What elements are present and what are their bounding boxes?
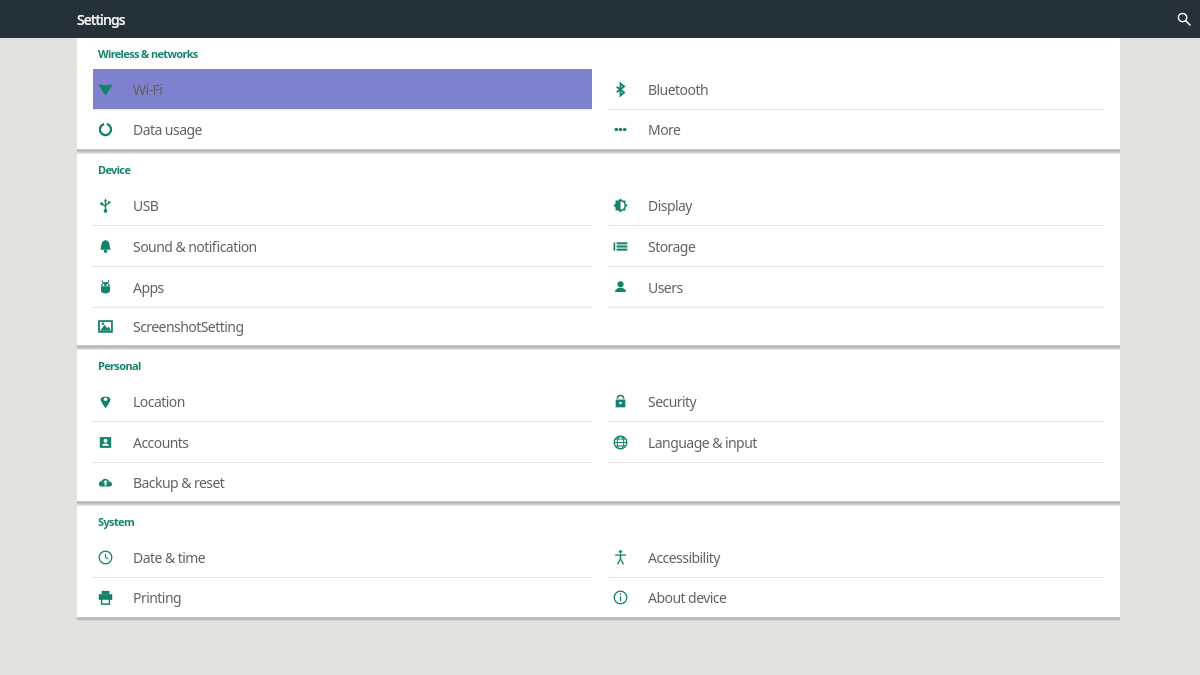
staticText: Wi-Fi	[133, 80, 163, 99]
button[interactable]: Apps	[77, 267, 599, 307]
staticText: More	[648, 120, 681, 139]
button[interactable]: Security	[599, 381, 1120, 421]
button[interactable]: Accounts	[77, 422, 599, 462]
button[interactable]: Storage	[599, 226, 1120, 266]
staticText: About device	[648, 588, 727, 607]
staticText: Wireless & networks	[98, 46, 198, 61]
button[interactable]: ScreenshotSetting	[77, 308, 599, 345]
staticText: Personal	[98, 358, 141, 373]
button[interactable]: More	[599, 110, 1120, 149]
button[interactable]: Backup & reset	[77, 463, 599, 501]
staticText: Device	[98, 162, 131, 177]
staticText: Settings	[77, 10, 125, 29]
staticText: Date & time	[133, 548, 206, 567]
staticText: Display	[648, 196, 692, 215]
staticText: Accessibility	[648, 548, 720, 567]
button[interactable]: Date & time	[77, 537, 599, 577]
staticText: Bluetooth	[648, 80, 709, 99]
staticText: Sound & notification	[133, 237, 257, 256]
button[interactable]: USB	[77, 185, 599, 225]
button[interactable]: Printing	[77, 578, 599, 617]
staticText: Location	[133, 392, 185, 411]
button[interactable]: Bluetooth	[599, 69, 1120, 109]
staticText: System	[98, 514, 135, 529]
staticText: Data usage	[133, 120, 202, 139]
button[interactable]: Accessibility	[599, 537, 1120, 577]
staticText: USB	[133, 196, 159, 215]
button[interactable]: Data usage	[77, 110, 599, 149]
staticText: ScreenshotSetting	[133, 317, 244, 336]
button[interactable]: Wi-Fi	[77, 69, 599, 109]
button[interactable]: Sound & notification	[77, 226, 599, 266]
staticText: Language & input	[648, 433, 757, 452]
staticText: Accounts	[133, 433, 189, 452]
staticText: Backup & reset	[133, 473, 225, 492]
staticText: Storage	[648, 237, 696, 256]
staticText: Printing	[133, 588, 182, 607]
button[interactable]: Display	[599, 185, 1120, 225]
button[interactable]: Search	[1169, 4, 1199, 34]
staticText: Users	[648, 278, 683, 297]
button[interactable]: Location	[77, 381, 599, 421]
staticText: Apps	[133, 278, 164, 297]
button[interactable]: About device	[599, 578, 1120, 617]
button[interactable]: Language & input	[599, 422, 1120, 462]
staticText: Security	[648, 392, 697, 411]
button[interactable]: Users	[599, 267, 1120, 307]
